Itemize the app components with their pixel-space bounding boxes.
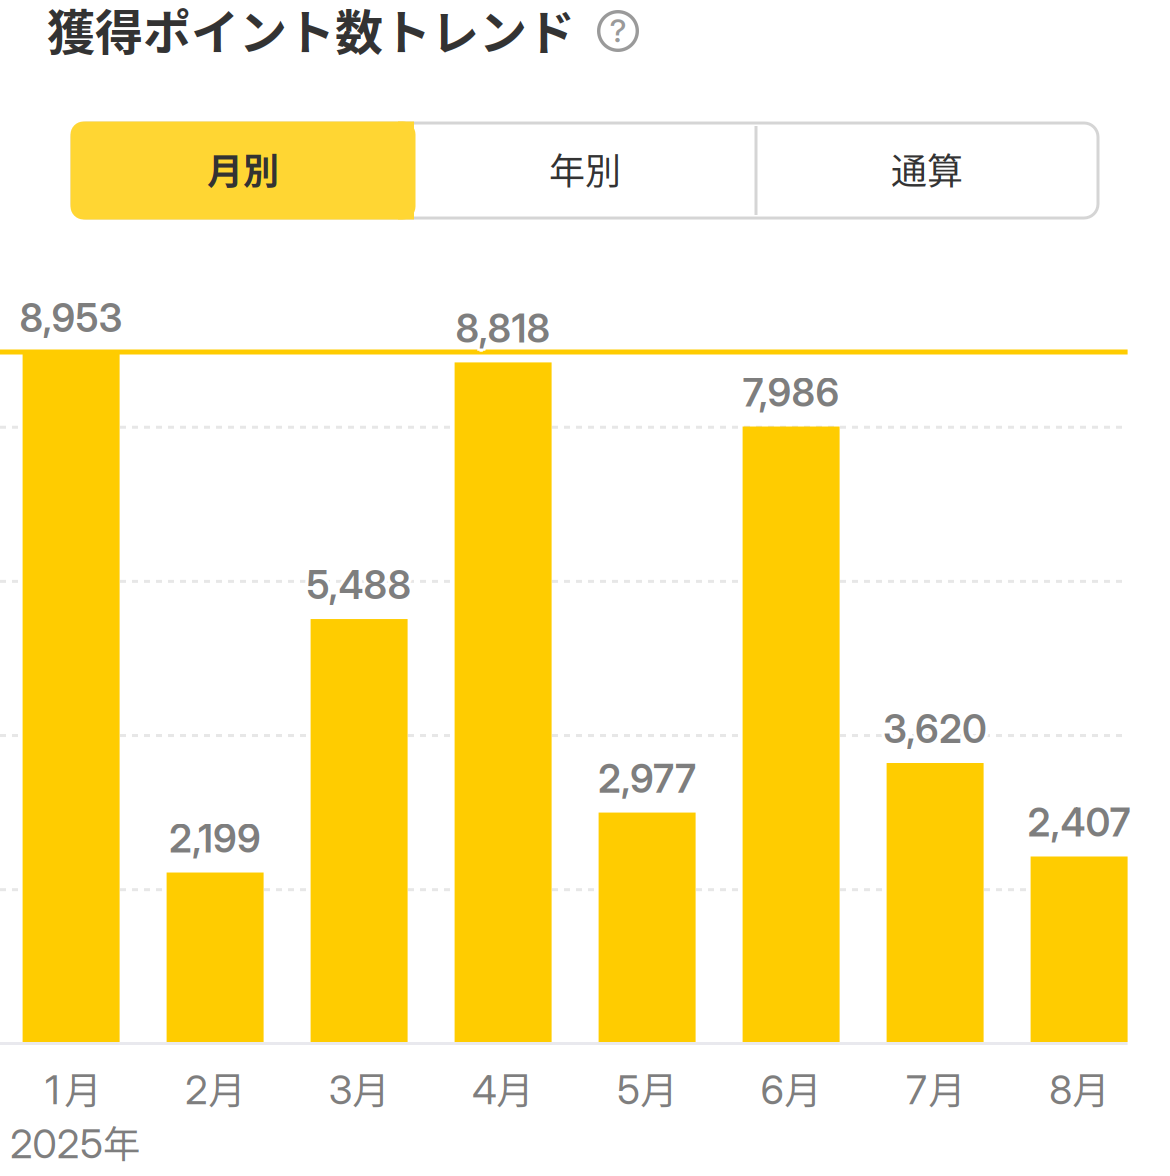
staticText: 8,953 — [22, 297, 125, 344]
staticText: 2,977 — [601, 755, 699, 802]
staticText: 2,199 — [169, 815, 261, 862]
staticText: 5,488 — [309, 564, 414, 611]
staticText: 2,407 — [1028, 801, 1131, 848]
staticText: 月 — [64, 1061, 101, 1115]
staticText: 8,953 — [20, 291, 123, 338]
staticText: 2,199 — [166, 815, 258, 862]
staticText: 月 — [784, 1061, 821, 1115]
staticText: 2,199 — [171, 813, 263, 859]
staticText: 5,488 — [307, 558, 412, 605]
staticText: 8,818 — [456, 308, 551, 355]
staticText: 5,488 — [310, 562, 415, 608]
staticText: 2 — [10, 1119, 33, 1168]
staticText: 5,488 — [308, 562, 413, 608]
staticText: 2,977 — [596, 755, 694, 802]
staticText: 2,407 — [1026, 799, 1129, 846]
staticText: 2,977 — [600, 758, 698, 804]
staticText: 2,977 — [598, 757, 696, 804]
staticText: 3,620 — [886, 706, 990, 752]
staticText: 2,407 — [1024, 799, 1127, 846]
staticText: 7,986 — [740, 367, 837, 413]
staticText: 8,818 — [456, 302, 551, 348]
staticText: 3,620 — [883, 704, 987, 751]
staticText: 2,407 — [1028, 797, 1131, 844]
staticText: 8,818 — [454, 305, 549, 352]
staticText: 2,977 — [600, 753, 698, 800]
staticText: 通算 — [891, 143, 963, 195]
staticText: 2,199 — [172, 815, 264, 862]
staticText: 2,407 — [1025, 797, 1128, 843]
staticText: 月別 — [207, 143, 279, 195]
staticText: 5,488 — [307, 562, 412, 608]
staticText: 3,620 — [885, 708, 989, 755]
staticText: 5,488 — [304, 564, 409, 611]
staticText: 2,199 — [169, 817, 261, 864]
staticText: 8,953 — [20, 293, 123, 340]
button[interactable]: 獲得ポイント数トレンドとは — [594, 7, 642, 55]
staticText: 2,199 — [167, 817, 259, 864]
staticText: 月 — [640, 1061, 677, 1115]
staticText: 8,953 — [17, 292, 120, 339]
staticText: 3,620 — [885, 703, 989, 750]
staticText: 2 — [185, 1065, 208, 1114]
staticText: 7 — [906, 1065, 927, 1114]
button[interactable]: 月別 — [72, 121, 414, 216]
staticText: 月 — [1072, 1061, 1109, 1115]
staticText: 2,199 — [171, 817, 263, 864]
staticText: 2,977 — [598, 755, 696, 802]
staticText: 8,818 — [457, 305, 552, 352]
staticText: 8,818 — [453, 303, 548, 349]
staticText: 5,488 — [307, 563, 412, 610]
staticText: 6 — [761, 1065, 785, 1114]
staticText: 2,199 — [169, 813, 261, 860]
staticText: 2 — [57, 1119, 80, 1168]
staticText: 2,199 — [169, 818, 261, 865]
staticText: 3,620 — [883, 707, 987, 754]
staticText: 5 — [80, 1119, 103, 1168]
staticText: 3,620 — [883, 706, 987, 752]
staticText: 7,986 — [743, 367, 840, 414]
staticText: 2,407 — [1030, 801, 1133, 848]
staticText: 5,488 — [309, 559, 414, 606]
staticText: 8,818 — [453, 307, 548, 354]
staticText: 3 — [329, 1065, 353, 1114]
staticText: 2,407 — [1029, 799, 1132, 846]
staticText: 年別 — [549, 143, 621, 195]
staticText: 2,407 — [1028, 799, 1131, 846]
staticText: 7,986 — [740, 371, 837, 418]
button[interactable]: 年別 — [414, 121, 756, 216]
staticText: 8,953 — [20, 296, 123, 343]
staticText: 8,953 — [17, 297, 120, 344]
button[interactable]: 通算 — [756, 121, 1098, 216]
staticText: 2,977 — [600, 755, 698, 802]
staticText: 8,818 — [456, 303, 551, 350]
staticText: 7,986 — [739, 369, 836, 416]
staticText: 3,620 — [883, 702, 987, 749]
staticText: 2,407 — [1025, 801, 1128, 848]
staticText: 5,488 — [304, 559, 409, 606]
staticText: 8,818 — [456, 305, 551, 352]
staticText: 2,977 — [596, 758, 694, 804]
staticText: 月 — [928, 1061, 965, 1115]
staticText: 2,977 — [598, 752, 696, 799]
staticText: 2,407 — [1028, 802, 1131, 849]
staticText: 7,986 — [743, 372, 840, 419]
staticText: 0 — [32, 1119, 57, 1168]
staticText: 5,488 — [307, 565, 412, 612]
staticText: 8,953 — [20, 295, 123, 341]
staticText: 8,953 — [20, 298, 123, 345]
staticText: 8 — [1049, 1065, 1072, 1114]
staticText: 2,199 — [169, 812, 261, 858]
staticText: 8,953 — [21, 295, 124, 341]
staticText: ? — [609, 11, 626, 50]
staticText: 7,986 — [741, 369, 838, 416]
staticText: 3,620 — [881, 708, 985, 755]
staticText: 7,986 — [743, 369, 840, 416]
staticText: 7,986 — [743, 366, 840, 412]
staticText: 年 — [103, 1115, 140, 1169]
staticText: 2,977 — [598, 759, 696, 805]
staticText: 8,953 — [18, 295, 121, 341]
staticText: 7,986 — [745, 367, 842, 413]
staticText: 2,199 — [167, 815, 259, 862]
staticText: 月 — [352, 1061, 389, 1115]
